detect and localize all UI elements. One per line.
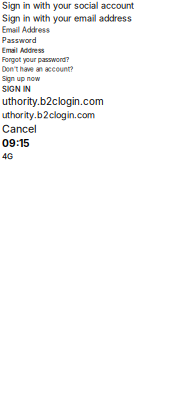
staticText: Forgot your password? <box>2 56 69 63</box>
staticText: Don't have an account? <box>2 66 73 73</box>
staticText: Sign in with your social account <box>2 0 134 11</box>
staticText: uthority.b2clogin.com <box>2 109 95 120</box>
staticText: Password <box>2 36 36 45</box>
staticText: Email Address <box>2 26 50 34</box>
staticText: 09:15 <box>2 137 29 150</box>
staticText: uthority.b2clogin.com <box>2 95 104 107</box>
staticText: Email Address <box>2 47 44 54</box>
staticText: Sign up now <box>2 75 40 82</box>
staticText: Cancel <box>2 122 37 135</box>
staticText: 4G <box>2 151 13 161</box>
staticText: Sign in with your email address <box>2 13 132 24</box>
staticText: SIGN IN <box>2 84 31 93</box>
